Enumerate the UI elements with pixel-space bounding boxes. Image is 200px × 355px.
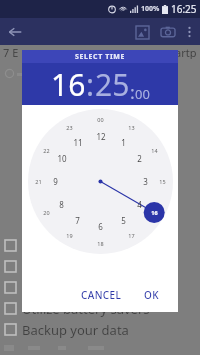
staticText: 19 <box>66 232 73 239</box>
staticText: artp <box>175 45 197 59</box>
staticText: 7 <box>75 215 80 226</box>
staticText: 18 <box>97 240 104 247</box>
staticText: : <box>130 80 135 105</box>
staticText: 11 <box>73 137 83 148</box>
staticText: 16 <box>151 209 158 216</box>
button[interactable] <box>0 256 200 277</box>
button[interactable]: Backup your data <box>0 319 200 340</box>
staticText: 17 <box>128 232 135 239</box>
staticText: 9 <box>53 176 58 187</box>
staticText: CANCEL <box>81 288 122 302</box>
staticText: 2 <box>137 153 142 164</box>
button[interactable]: Gallery <box>132 22 152 42</box>
staticText: SELECT TIME <box>75 52 125 62</box>
staticText: 21 <box>35 178 42 185</box>
staticText: 100% <box>141 4 160 14</box>
button[interactable]: CANCEL <box>76 285 127 305</box>
button[interactable]: Utilize battery savers <box>0 298 200 319</box>
staticText: OK <box>144 288 159 302</box>
staticText: 1 <box>121 137 126 148</box>
staticText: 4 <box>137 199 142 210</box>
staticText: Backup your data <box>22 321 129 339</box>
button[interactable]: Clock face, hour 16 selected <box>28 109 173 254</box>
button[interactable] <box>0 277 200 298</box>
staticText: 7 E <box>3 45 19 59</box>
button[interactable] <box>0 235 200 256</box>
button[interactable]: 25 <box>95 64 130 105</box>
staticText: 14 <box>151 147 158 154</box>
button[interactable]: 00 <box>135 85 150 103</box>
staticText: 3 <box>143 176 148 187</box>
staticText: : <box>86 64 95 105</box>
staticText: 13 <box>128 124 135 131</box>
button[interactable]: Camera <box>158 22 178 42</box>
staticText: 5 <box>121 215 126 226</box>
button[interactable]: 16 <box>51 64 86 105</box>
staticText: 8 <box>59 199 64 210</box>
staticText: 23 <box>66 124 73 131</box>
button[interactable]: Back <box>5 22 25 42</box>
staticText: 15 <box>159 178 166 185</box>
staticText: 10 <box>57 153 67 164</box>
staticText: 22 <box>43 147 50 154</box>
button[interactable]: Clock face, hour 16 selected <box>28 109 173 254</box>
button[interactable]: More options <box>181 24 197 40</box>
staticText: 6 <box>98 221 103 232</box>
staticText: 16:25 <box>171 2 197 16</box>
staticText: 00 <box>97 116 104 123</box>
staticText: 20 <box>43 209 50 216</box>
staticText: Utilize battery savers <box>22 300 150 318</box>
staticText: 12 <box>96 131 106 142</box>
button[interactable]: OK <box>139 285 164 305</box>
